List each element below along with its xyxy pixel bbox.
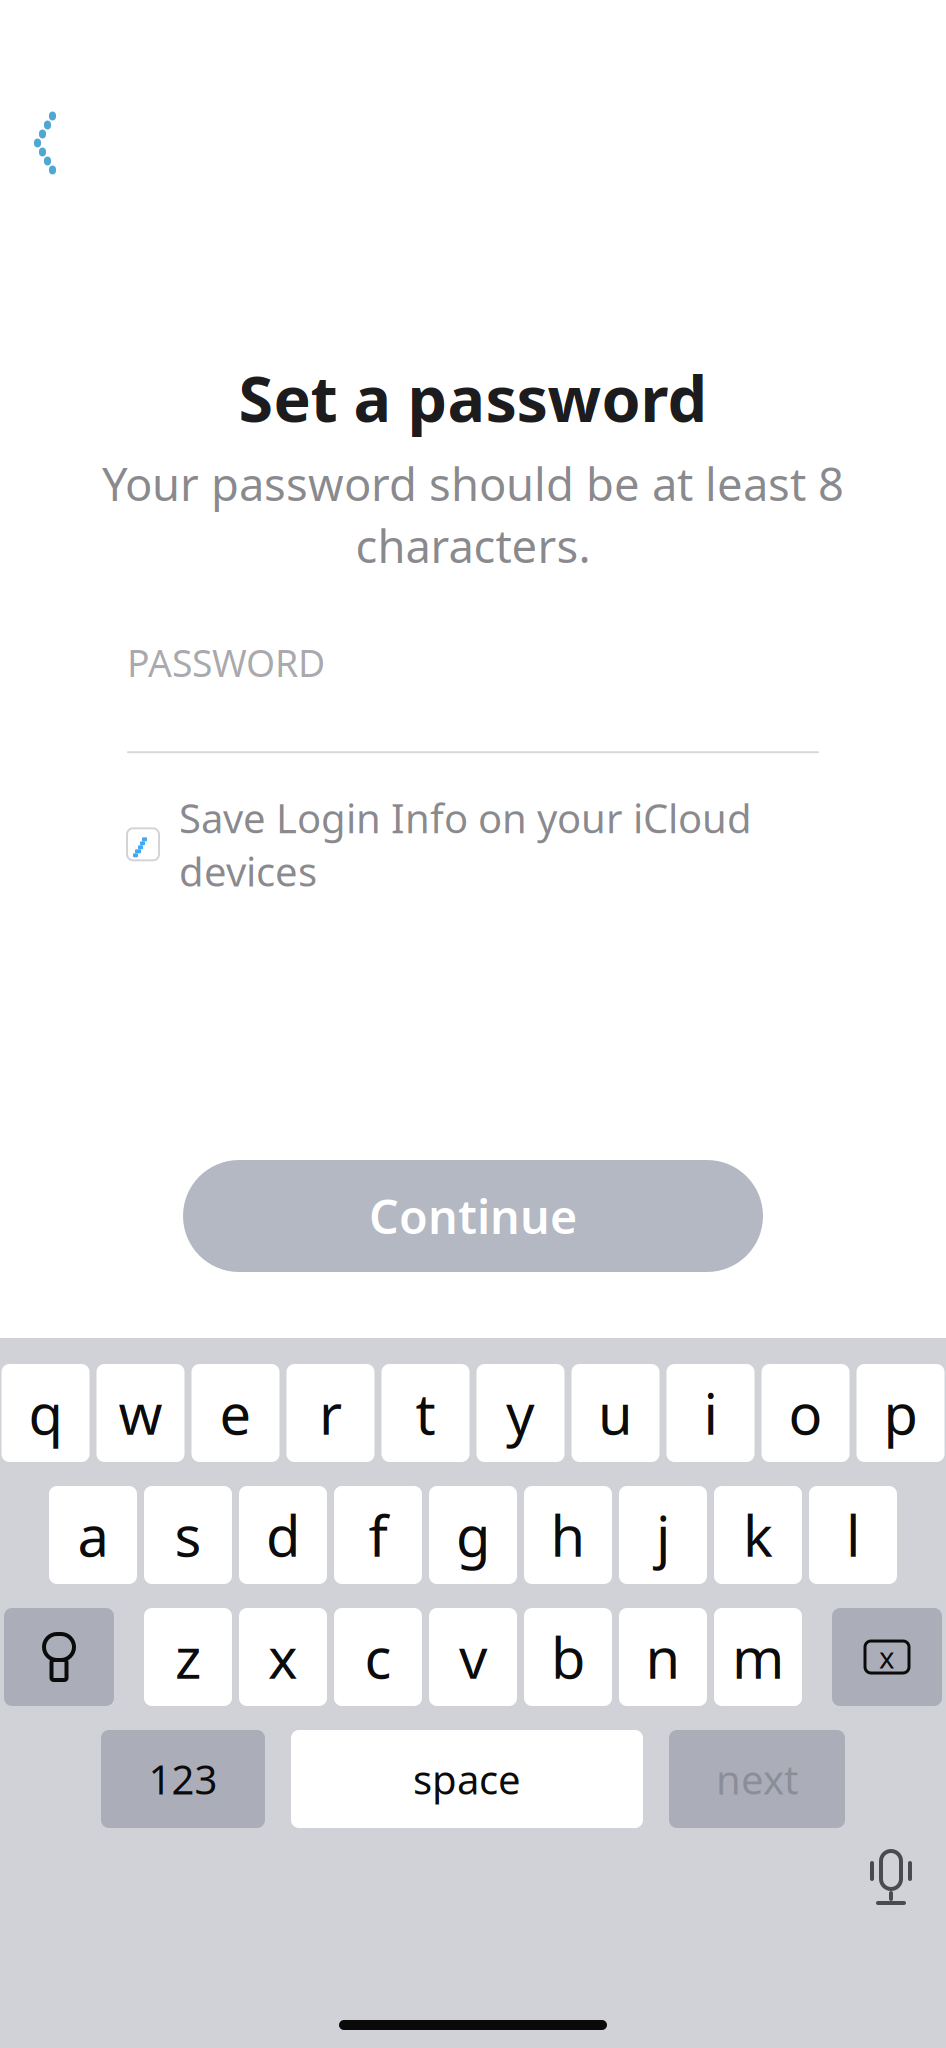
button[interactable]: p: [856, 1364, 944, 1462]
button[interactable]: n: [619, 1608, 707, 1706]
button[interactable]: o: [761, 1364, 849, 1462]
staticText: next: [716, 1752, 798, 1805]
staticText: f: [368, 1498, 387, 1572]
button[interactable]: x: [239, 1608, 327, 1706]
button[interactable]: space: [291, 1730, 643, 1828]
staticText: s: [174, 1498, 201, 1572]
staticText: r: [319, 1376, 342, 1450]
staticText: Save Login Info on your iCloud devices: [179, 791, 752, 897]
staticText: o: [788, 1376, 822, 1450]
button[interactable]: z: [144, 1608, 232, 1706]
button[interactable]: q: [1, 1364, 89, 1462]
button[interactable]: r: [286, 1364, 374, 1462]
button[interactable]: m: [714, 1608, 802, 1706]
staticText: p: [883, 1376, 917, 1450]
staticText: v: [459, 1620, 487, 1694]
button[interactable]: Delete: [832, 1608, 942, 1706]
button[interactable]: k: [714, 1486, 802, 1584]
button[interactable]: s: [144, 1486, 232, 1584]
staticText: m: [732, 1620, 784, 1694]
button[interactable]: t: [381, 1364, 469, 1462]
button[interactable]: a: [49, 1486, 137, 1584]
staticText: Continue: [369, 1185, 577, 1247]
button[interactable]: j: [619, 1486, 707, 1584]
staticText: z: [175, 1620, 201, 1694]
staticText: u: [598, 1376, 633, 1450]
button[interactable]: y: [476, 1364, 564, 1462]
staticText: x: [268, 1620, 298, 1694]
staticText: e: [219, 1376, 251, 1450]
button[interactable]: h: [524, 1486, 612, 1584]
button[interactable]: w: [96, 1364, 184, 1462]
button[interactable]: l: [809, 1486, 897, 1584]
staticText: n: [645, 1620, 680, 1694]
staticText: y: [506, 1376, 535, 1450]
staticText: characters.: [355, 515, 590, 576]
staticText: PASSWORD: [127, 638, 325, 687]
staticText: b: [551, 1620, 585, 1694]
staticText: l: [846, 1498, 860, 1572]
button[interactable]: i: [666, 1364, 754, 1462]
button[interactable]: 123: [101, 1730, 265, 1828]
button[interactable]: u: [571, 1364, 659, 1462]
staticText: h: [550, 1498, 585, 1572]
button[interactable]: Back: [0, 98, 80, 188]
button[interactable]: c: [334, 1608, 422, 1706]
staticText: i: [703, 1376, 717, 1450]
staticText: d: [266, 1498, 300, 1572]
button[interactable]: g: [429, 1486, 517, 1584]
staticText: space: [413, 1752, 521, 1805]
staticText: j: [656, 1498, 670, 1572]
staticText: 123: [148, 1752, 217, 1805]
staticText: w: [118, 1376, 162, 1450]
staticText: Your password should be at least 8: [102, 453, 844, 513]
staticText: x: [879, 1637, 895, 1676]
button[interactable]: Dictate: [862, 1842, 920, 1914]
staticText: Set a password: [238, 356, 707, 439]
button[interactable]: Continue: [183, 1160, 763, 1272]
button[interactable]: e: [191, 1364, 279, 1462]
button[interactable]: f: [334, 1486, 422, 1584]
button[interactable]: Shift: [4, 1608, 114, 1706]
staticText: g: [456, 1498, 490, 1572]
staticText: c: [364, 1620, 391, 1694]
staticText: t: [415, 1376, 435, 1450]
button[interactable]: d: [239, 1486, 327, 1584]
staticText: a: [77, 1498, 108, 1572]
button[interactable]: next: [669, 1730, 845, 1828]
button[interactable]: Save Login Info on your iCloud devices: [127, 779, 819, 909]
staticText: q: [28, 1376, 62, 1450]
button[interactable]: b: [524, 1608, 612, 1706]
button[interactable]: v: [429, 1608, 517, 1706]
staticText: k: [743, 1498, 773, 1572]
